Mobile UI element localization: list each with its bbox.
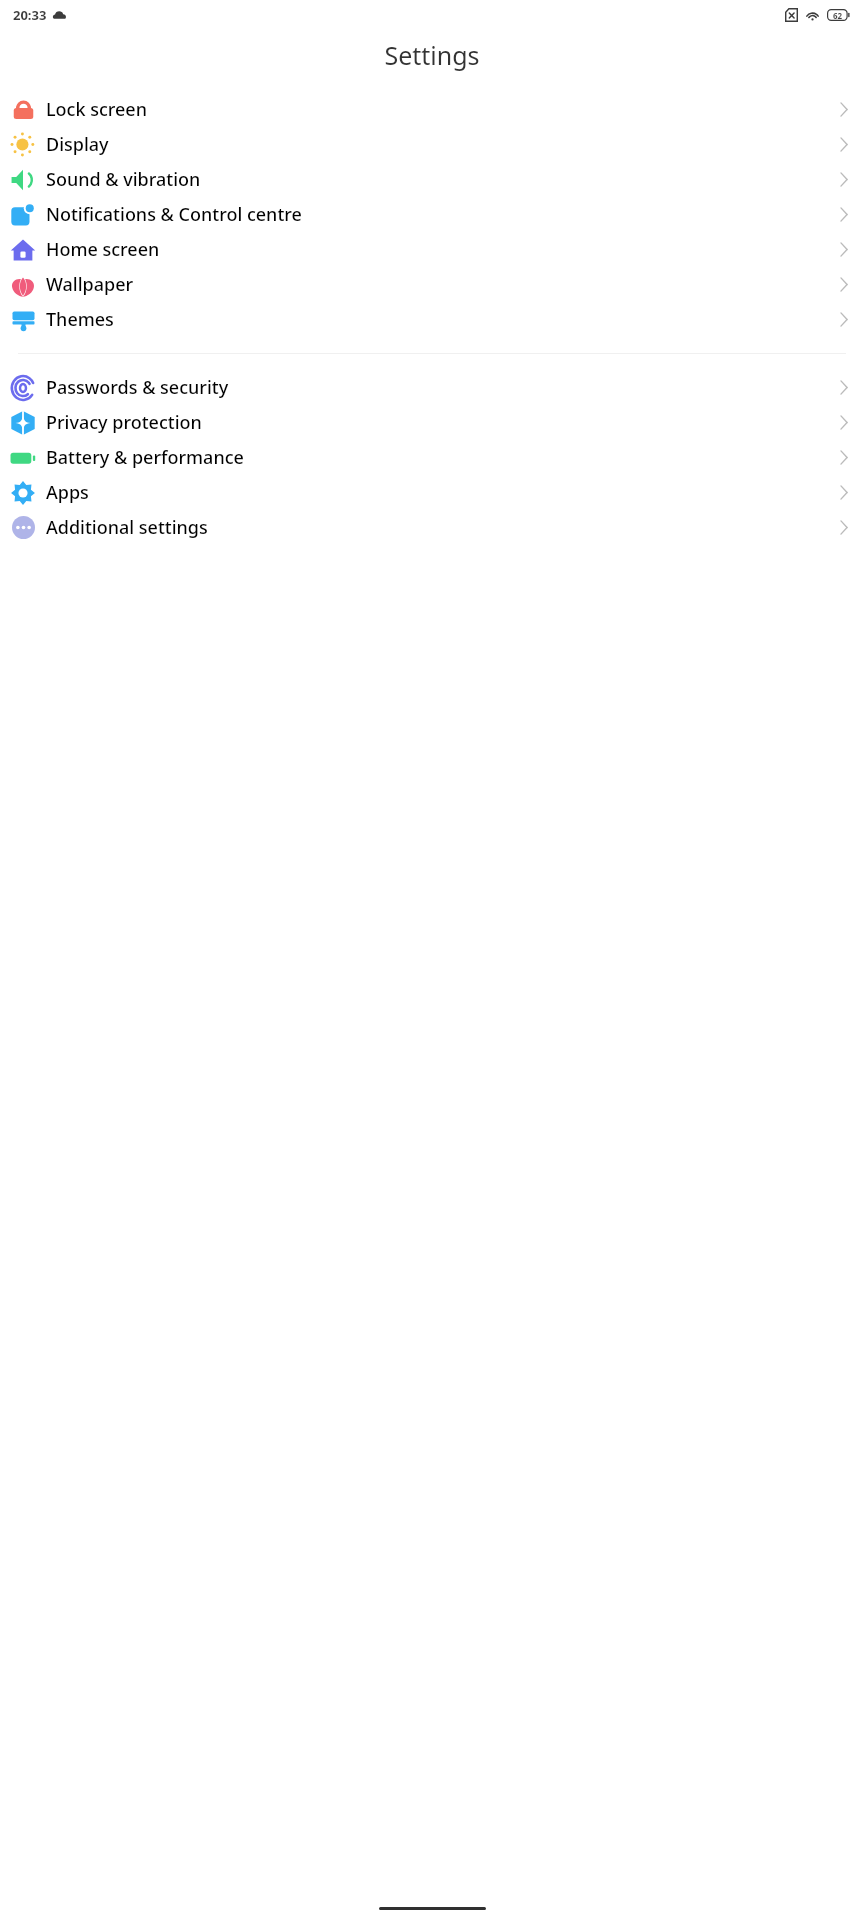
staticText: Additional settings <box>46 515 824 540</box>
button[interactable]: Themes <box>0 302 864 337</box>
button[interactable]: Sound & vibration <box>0 162 864 197</box>
staticText: Sound & vibration <box>46 167 824 192</box>
button[interactable]: Privacy protection <box>0 405 864 440</box>
staticText: Settings <box>384 38 480 72</box>
staticText: Themes <box>46 307 824 332</box>
staticText: Notifications & Control centre <box>46 202 824 227</box>
button[interactable]: Passwords & security <box>0 370 864 405</box>
staticText: Privacy protection <box>46 410 824 435</box>
button[interactable]: Notifications & Control centre <box>0 197 864 232</box>
button[interactable]: Additional settings <box>0 510 864 545</box>
staticText: Lock screen <box>46 97 824 122</box>
staticText: Home screen <box>46 237 824 262</box>
staticText: Apps <box>46 480 824 505</box>
staticText: 20:33 <box>13 6 47 24</box>
button[interactable]: Battery & performance <box>0 440 864 475</box>
button[interactable]: Wallpaper <box>0 267 864 302</box>
staticText: Passwords & security <box>46 375 824 400</box>
staticText: Display <box>46 132 824 157</box>
staticText: Wallpaper <box>46 272 824 297</box>
button[interactable]: Home screen <box>0 232 864 267</box>
staticText: Battery & performance <box>46 445 824 470</box>
button[interactable]: Display <box>0 127 864 162</box>
staticText: 62 <box>833 10 843 21</box>
button[interactable]: Lock screen <box>0 92 864 127</box>
button[interactable]: Apps <box>0 475 864 510</box>
